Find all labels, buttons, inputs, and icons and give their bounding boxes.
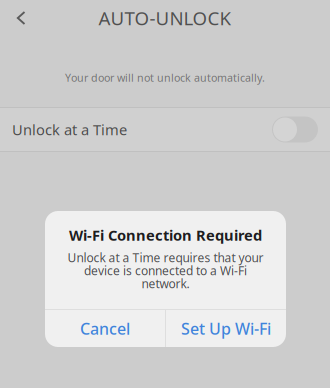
staticText: Set Up Wi-Fi [181, 318, 271, 339]
staticText: Your door will not unlock automatically. [65, 70, 265, 85]
staticText: device is connected to a Wi-Fi [84, 262, 247, 278]
button[interactable]: Back [0, 1, 40, 35]
button[interactable]: Cancel [45, 310, 165, 347]
button[interactable]: Set Up Wi-Fi [166, 310, 286, 347]
staticText: Unlock at a Time [12, 120, 127, 139]
button[interactable]: Unlock at a Time [0, 108, 330, 151]
staticText: Unlock at a Time requires that your [67, 249, 263, 265]
staticText: Cancel [80, 318, 130, 339]
staticText: network. [141, 275, 189, 291]
staticText: AUTO-UNLOCK [98, 6, 231, 30]
staticText: Wi-Fi Connection Required [69, 225, 262, 245]
